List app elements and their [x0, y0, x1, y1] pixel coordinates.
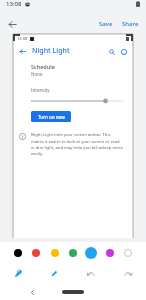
button[interactable]: Color 6 — [102, 245, 118, 261]
staticText: Schedule — [31, 63, 55, 70]
button[interactable]: Turn on now — [31, 111, 71, 122]
staticText: None — [31, 71, 43, 77]
button[interactable]: Home — [62, 290, 84, 294]
button[interactable]: Color 3 — [47, 245, 63, 261]
staticText: Share — [122, 20, 139, 28]
button[interactable]: Color 1 — [10, 245, 26, 261]
button[interactable]: Color 4 — [65, 245, 81, 261]
button[interactable]: Color 5 — [83, 245, 99, 261]
button[interactable]: Save — [96, 18, 116, 30]
staticText: 13:08 — [17, 36, 28, 41]
staticText: Save — [99, 20, 113, 28]
staticText: Night Light tints your screen amber. Thi… — [31, 132, 123, 156]
button[interactable]: Back — [4, 16, 20, 32]
button[interactable]: Redo — [109, 264, 146, 284]
button[interactable]: Highlighter — [36, 264, 72, 284]
button[interactable]: Share — [119, 18, 142, 30]
button[interactable]: Help — [118, 46, 129, 57]
staticText: Night Light — [32, 46, 70, 56]
button[interactable]: Schedule — [31, 63, 123, 77]
button[interactable]: Navigate up — [17, 46, 28, 57]
button[interactable]: Pen — [0, 264, 36, 284]
button[interactable]: Back — [26, 286, 38, 298]
staticText: 13:08 — [6, 0, 22, 8]
button[interactable] — [31, 98, 123, 104]
button[interactable]: Undo — [72, 264, 109, 284]
staticText: Turn on now — [38, 114, 65, 120]
button[interactable]: Search — [106, 46, 117, 57]
staticText: Intensity — [31, 87, 50, 93]
button[interactable]: Color 7 — [120, 245, 136, 261]
button[interactable]: Color 2 — [28, 245, 44, 261]
